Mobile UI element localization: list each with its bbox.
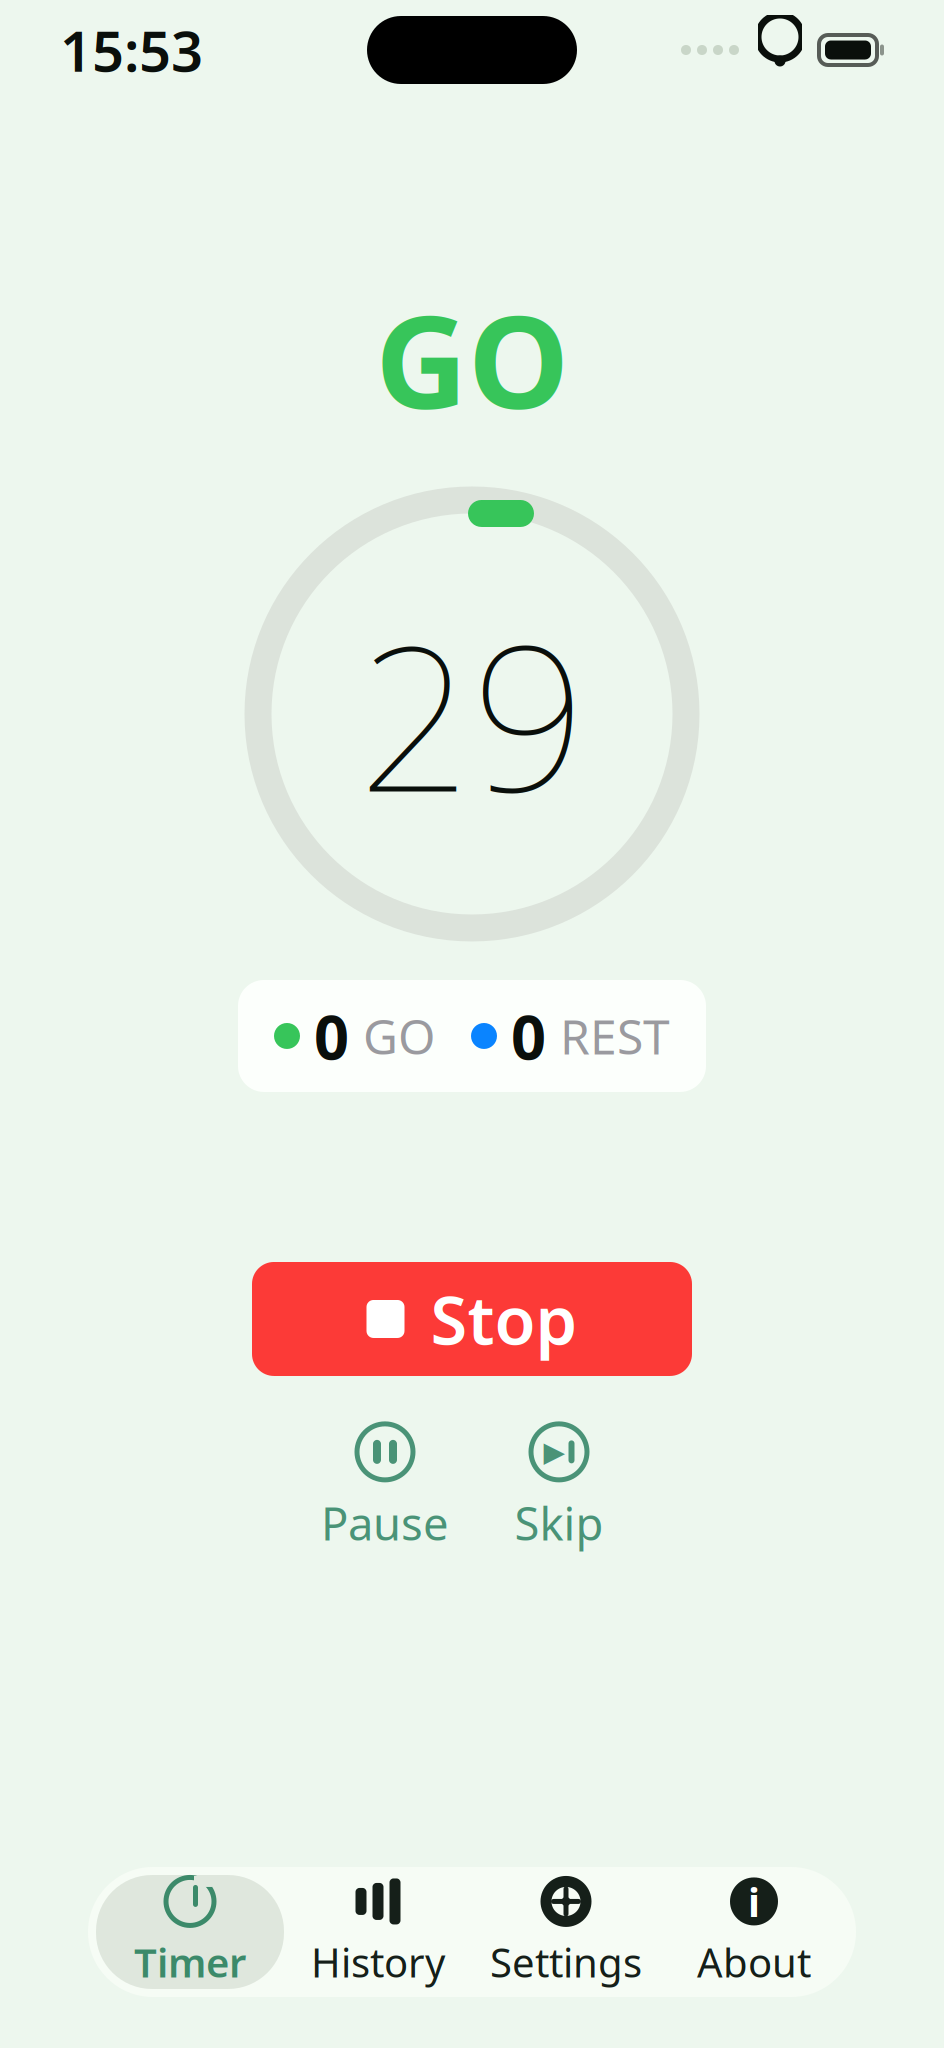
staticText: Pause xyxy=(321,1493,449,1553)
staticText: 15:53 xyxy=(60,13,203,87)
button[interactable]: i xyxy=(660,1875,848,1989)
staticText: Timer xyxy=(134,1935,246,1988)
staticText: About xyxy=(697,1935,811,1988)
staticText: GO xyxy=(363,1004,435,1068)
staticText: 0 xyxy=(314,995,349,1077)
button[interactable]: Pause xyxy=(305,1424,465,1552)
staticText: Skip xyxy=(514,1493,603,1553)
staticText: GO xyxy=(375,274,569,444)
button[interactable]: ▶ xyxy=(479,1424,639,1552)
staticText: Stop xyxy=(430,1275,577,1363)
staticText: 0 xyxy=(511,995,546,1077)
button[interactable]: Timer xyxy=(96,1875,284,1989)
staticText: Settings xyxy=(490,1935,642,1988)
staticText: History xyxy=(311,1935,445,1988)
staticText: i xyxy=(748,1875,760,1928)
button[interactable]: Settings xyxy=(472,1875,660,1989)
staticText: 29 xyxy=(358,581,586,847)
staticText: ▶ xyxy=(543,1436,565,1468)
button[interactable]: History xyxy=(284,1875,472,1989)
button[interactable]: Stop xyxy=(252,1262,692,1376)
staticText: REST xyxy=(560,1004,670,1068)
